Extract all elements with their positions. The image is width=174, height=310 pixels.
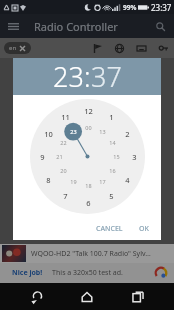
staticText: Radio Controller: [34, 19, 118, 34]
staticText: This a 320x50 test ad.: [52, 268, 123, 278]
staticText: 12: [84, 106, 93, 116]
button[interactable]: en: [4, 42, 31, 54]
staticText: 2: [125, 129, 130, 139]
button[interactable]: Search: [151, 17, 169, 35]
staticText: 23: [70, 128, 77, 135]
button[interactable]: Language: [112, 41, 126, 55]
staticText: 23: [53, 58, 84, 95]
staticText: CANCEL: [96, 224, 123, 234]
button[interactable]: Password: [156, 41, 170, 55]
staticText: 18: [85, 182, 92, 189]
button[interactable]: 37: [91, 58, 122, 95]
staticText: 20: [60, 167, 67, 174]
staticText: 99%: [123, 3, 137, 12]
staticText: en: [9, 44, 17, 52]
staticText: Nice job!: [12, 268, 43, 278]
staticText: 11: [61, 112, 70, 122]
button[interactable]: Keyboard: [134, 41, 148, 55]
staticText: 9: [40, 152, 45, 162]
staticText: 19: [70, 178, 77, 185]
staticText: 1: [109, 112, 114, 122]
staticText: 10: [44, 129, 53, 139]
staticText: 7: [63, 191, 68, 201]
button[interactable]: Home: [73, 283, 101, 310]
staticText: :: [84, 58, 91, 95]
button[interactable]: Flag: [90, 41, 104, 55]
staticText: 4: [125, 175, 130, 185]
staticText: 5: [109, 191, 114, 201]
staticText: 13: [99, 128, 106, 135]
button[interactable]: OK: [133, 221, 155, 237]
button[interactable]: CANCEL: [90, 221, 129, 237]
button[interactable]: Back: [23, 283, 51, 310]
staticText: OK: [139, 224, 149, 234]
staticText: 3: [132, 152, 137, 162]
staticText: 00: [85, 124, 92, 131]
staticText: 15: [113, 153, 120, 160]
staticText: 8: [46, 175, 51, 185]
staticText: 37: [91, 58, 122, 95]
button[interactable]: 12: [30, 99, 145, 214]
staticText: 17: [99, 178, 106, 185]
button[interactable]: Open navigation menu: [4, 17, 22, 35]
staticText: 14: [109, 139, 116, 146]
button[interactable]: WQOO-HD2 "Talk 100.7 Radio" Sylv…: [0, 244, 174, 263]
button[interactable]: Nice job!: [0, 263, 174, 283]
button[interactable]: Recent apps: [124, 283, 152, 310]
staticText: WQOO-HD2 "Talk 100.7 Radio" Sylv…: [31, 249, 151, 259]
staticText: 22: [60, 139, 67, 146]
staticText: 16: [109, 167, 116, 174]
button[interactable]: 23: [53, 58, 84, 95]
staticText: 6: [86, 198, 91, 208]
staticText: 21: [56, 153, 63, 160]
staticText: 23:37: [151, 2, 172, 13]
